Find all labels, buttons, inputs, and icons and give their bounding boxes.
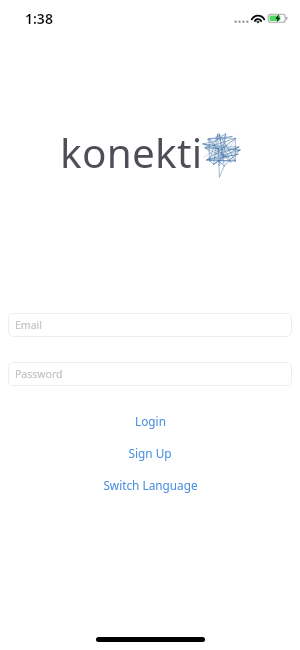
button[interactable]: Login <box>129 411 172 431</box>
button[interactable]: Switch Language <box>97 475 204 495</box>
staticText: Sign Up <box>128 445 172 461</box>
staticText: Password <box>15 367 63 381</box>
staticText: konekti <box>60 125 203 180</box>
staticText: Login <box>135 413 166 429</box>
staticText: Switch Language <box>103 477 198 493</box>
button[interactable]: Password <box>8 362 292 386</box>
other: Konekti network logo <box>201 131 241 178</box>
staticText: Email <box>15 318 42 332</box>
button[interactable]: Email <box>8 313 292 337</box>
staticText: 1:38 <box>25 9 53 28</box>
button[interactable]: Sign Up <box>122 443 178 463</box>
